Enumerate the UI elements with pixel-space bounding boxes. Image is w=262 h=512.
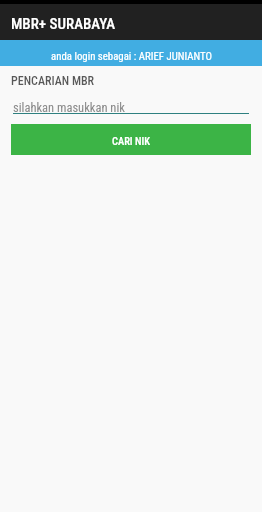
button[interactable]: NIK input field — [13, 98, 249, 114]
button[interactable]: CARI NIK — [11, 124, 251, 155]
staticText: anda login sebagai : ARIEF JUNIANTO — [51, 50, 212, 63]
staticText: silahkan masukkan nik — [13, 100, 125, 115]
staticText: CARI NIK — [112, 135, 150, 147]
staticText: MBR+ SURABAYA — [11, 15, 116, 33]
button[interactable]: anda login sebagai : ARIEF JUNIANTO — [0, 40, 262, 66]
staticText: PENCARIAN MBR — [11, 74, 95, 88]
